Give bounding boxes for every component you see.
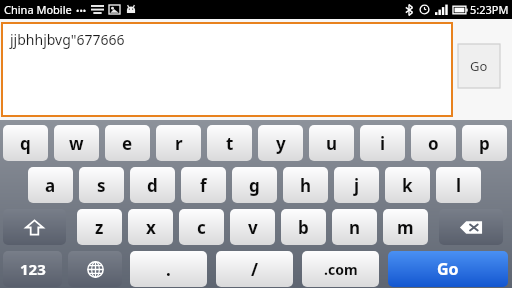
staticText: g bbox=[249, 174, 260, 197]
staticText: z bbox=[95, 216, 104, 239]
staticText: c bbox=[197, 216, 206, 239]
button[interactable]: / bbox=[216, 251, 293, 287]
staticText: .com bbox=[324, 260, 358, 279]
button[interactable]: n bbox=[332, 209, 377, 245]
staticText: s bbox=[97, 174, 106, 197]
staticText: e bbox=[122, 132, 133, 155]
staticText: Go bbox=[470, 57, 488, 75]
button[interactable]: Go bbox=[388, 251, 508, 287]
staticText: m bbox=[397, 216, 414, 239]
button[interactable]: r bbox=[156, 125, 201, 161]
staticText: q bbox=[20, 132, 31, 155]
button[interactable]: v bbox=[230, 209, 275, 245]
staticText: k bbox=[402, 174, 413, 197]
button[interactable]: o bbox=[411, 125, 456, 161]
staticText: y bbox=[276, 132, 286, 155]
button[interactable]: e bbox=[105, 125, 150, 161]
button[interactable]: w bbox=[54, 125, 99, 161]
button[interactable]: Backspace bbox=[439, 209, 503, 245]
button[interactable]: l bbox=[436, 167, 481, 203]
staticText: ••• bbox=[76, 4, 87, 16]
staticText: w bbox=[69, 132, 84, 155]
staticText: a bbox=[45, 174, 56, 197]
button[interactable]: b bbox=[281, 209, 326, 245]
button[interactable]: 123 bbox=[3, 251, 62, 287]
staticText: u bbox=[326, 132, 338, 155]
staticText: i bbox=[380, 132, 386, 155]
button[interactable]: .com bbox=[302, 251, 379, 287]
staticText: China Mobile bbox=[4, 2, 72, 17]
staticText: d bbox=[147, 174, 158, 197]
button[interactable]: Change language bbox=[68, 251, 122, 287]
button[interactable]: p bbox=[462, 125, 507, 161]
staticText: b bbox=[298, 216, 309, 239]
staticText: 123 bbox=[20, 259, 46, 279]
button[interactable]: m bbox=[383, 209, 428, 245]
staticText: f bbox=[200, 174, 207, 197]
button[interactable]: q bbox=[3, 125, 48, 161]
staticText: j bbox=[354, 174, 360, 197]
button[interactable]: t bbox=[207, 125, 252, 161]
button[interactable]: i bbox=[360, 125, 405, 161]
staticText: 5:23PM bbox=[470, 2, 509, 17]
button[interactable]: k bbox=[385, 167, 430, 203]
button[interactable]: c bbox=[179, 209, 224, 245]
button[interactable]: j bbox=[334, 167, 379, 203]
staticText: / bbox=[251, 258, 259, 281]
staticText: jjbhhjbvg"677666 bbox=[10, 30, 125, 49]
staticText: Go bbox=[437, 258, 459, 280]
staticText: . bbox=[166, 258, 171, 281]
button[interactable]: . bbox=[130, 251, 207, 287]
staticText: x bbox=[146, 216, 156, 239]
button[interactable]: f bbox=[181, 167, 226, 203]
button[interactable]: Go bbox=[458, 44, 500, 88]
staticText: l bbox=[456, 174, 462, 197]
button[interactable]: Shift bbox=[3, 209, 66, 245]
staticText: t bbox=[226, 132, 234, 155]
button[interactable]: a bbox=[28, 167, 73, 203]
button[interactable]: u bbox=[309, 125, 354, 161]
button[interactable]: jjbhhjbvg"677666 bbox=[2, 23, 452, 116]
button[interactable]: x bbox=[128, 209, 173, 245]
staticText: h bbox=[300, 174, 312, 197]
button[interactable]: g bbox=[232, 167, 277, 203]
staticText: p bbox=[479, 132, 490, 155]
button[interactable]: d bbox=[130, 167, 175, 203]
button[interactable]: y bbox=[258, 125, 303, 161]
button[interactable]: z bbox=[77, 209, 122, 245]
button[interactable]: h bbox=[283, 167, 328, 203]
staticText: n bbox=[349, 216, 361, 239]
staticText: v bbox=[248, 216, 258, 239]
staticText: r bbox=[175, 132, 183, 155]
button[interactable]: s bbox=[79, 167, 124, 203]
staticText: o bbox=[428, 132, 439, 155]
